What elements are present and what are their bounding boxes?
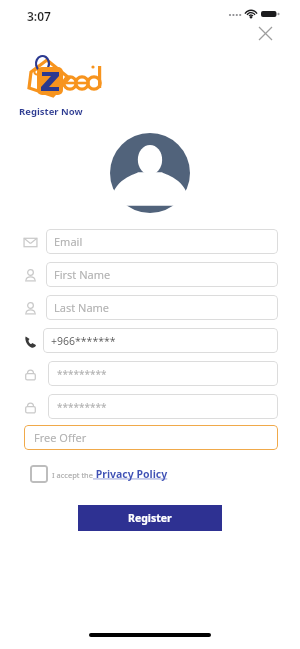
staticText: First Name xyxy=(54,267,111,282)
staticText: +966******* xyxy=(51,334,116,348)
button[interactable]: I accept the Privacy Policy xyxy=(52,467,168,481)
staticText: 3:07 xyxy=(27,8,51,24)
staticText: ********* xyxy=(57,400,107,414)
button[interactable]: Last Name xyxy=(46,295,278,320)
staticText: Register Now xyxy=(19,105,83,118)
staticText: Email xyxy=(54,234,83,249)
button[interactable]: Register xyxy=(78,505,222,531)
staticText: Free Offer xyxy=(34,430,87,445)
button[interactable]: Free Offer xyxy=(24,425,278,450)
button[interactable]: ********* xyxy=(48,361,278,386)
button[interactable]: +966******* xyxy=(43,328,278,353)
staticText: ********* xyxy=(57,367,107,381)
button[interactable]: Email xyxy=(46,229,278,254)
staticText: Last Name xyxy=(54,300,110,315)
staticText: Register xyxy=(128,511,172,525)
button[interactable]: First Name xyxy=(46,262,278,287)
button[interactable]: ********* xyxy=(48,394,278,419)
button[interactable]: Close xyxy=(252,20,278,46)
staticText: I accept the Privacy Policy xyxy=(52,467,168,481)
button[interactable]: Accept privacy policy xyxy=(30,465,48,483)
